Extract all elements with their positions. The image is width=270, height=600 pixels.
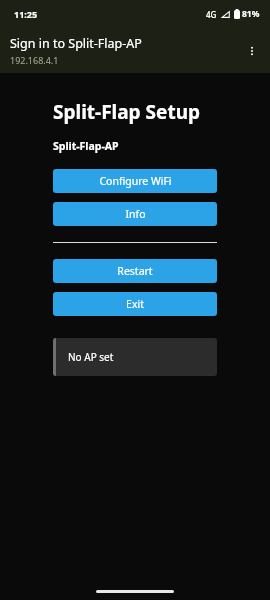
- staticText: Split-Flap Setup: [53, 99, 200, 125]
- staticText: Info: [125, 207, 146, 221]
- button[interactable]: Info: [53, 202, 217, 226]
- staticText: Split-Flap-AP: [53, 139, 119, 153]
- button[interactable]: More options: [238, 37, 266, 65]
- button[interactable]: Exit: [53, 292, 217, 316]
- button[interactable]: No AP set: [53, 338, 217, 376]
- staticText: 81%: [242, 8, 260, 20]
- staticText: 4G: [206, 9, 217, 20]
- staticText: 11:25: [14, 8, 38, 20]
- staticText: Exit: [126, 297, 144, 311]
- staticText: Sign in to Split-Flap-AP: [10, 35, 142, 52]
- button[interactable]: Restart: [53, 259, 217, 283]
- staticText: 192.168.4.1: [10, 54, 59, 66]
- staticText: No AP set: [68, 350, 114, 364]
- staticText: Restart: [117, 264, 153, 278]
- button[interactable]: Configure WiFi: [53, 169, 217, 193]
- staticText: Configure WiFi: [99, 174, 172, 188]
